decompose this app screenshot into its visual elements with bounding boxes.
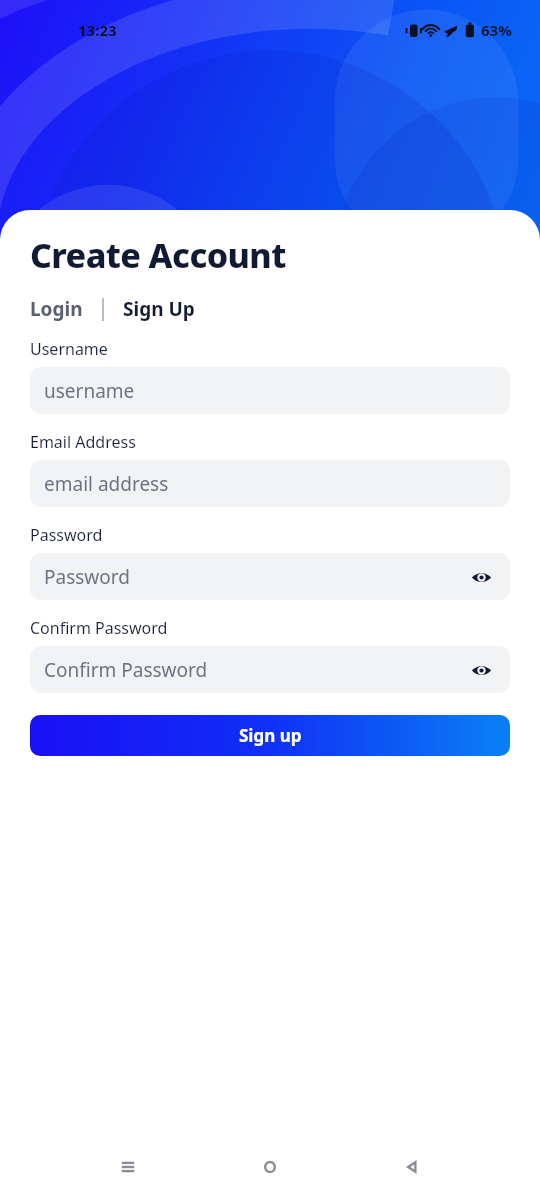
staticText: Password (30, 524, 103, 546)
staticText: Sign up (239, 724, 302, 747)
button[interactable]: Home (247, 1144, 293, 1190)
staticText: 63% (481, 20, 512, 40)
staticText: 13:23 (78, 20, 117, 40)
staticText: Username (30, 338, 108, 360)
button[interactable]: Sign up (30, 715, 510, 756)
staticText: Create Account (30, 232, 286, 278)
button[interactable]: Show password (466, 562, 496, 592)
button[interactable]: Login (30, 296, 83, 322)
button[interactable]: Menu (105, 1144, 151, 1190)
staticText: Confirm Password (44, 657, 208, 683)
staticText: email address (44, 471, 169, 497)
button[interactable]: username (30, 367, 510, 414)
button[interactable]: email address (30, 460, 510, 507)
button[interactable]: Show password (466, 655, 496, 685)
button[interactable]: Sign Up (123, 296, 195, 322)
staticText: Sign Up (123, 296, 195, 322)
button[interactable]: Password (30, 553, 510, 600)
staticText: username (44, 378, 135, 404)
staticText: Password (44, 564, 130, 590)
staticText: Login (30, 296, 83, 322)
button[interactable]: Back (389, 1144, 435, 1190)
staticText: Email Address (30, 431, 136, 453)
staticText: Confirm Password (30, 617, 168, 639)
button[interactable]: Confirm Password (30, 646, 510, 693)
